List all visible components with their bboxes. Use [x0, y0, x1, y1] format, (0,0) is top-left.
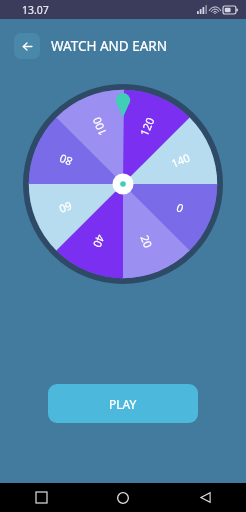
button[interactable]: Home [82, 483, 164, 512]
button[interactable]: PLAY [48, 384, 198, 423]
button[interactable]: Back [164, 483, 246, 512]
button[interactable]: Spin wheel [23, 84, 223, 284]
staticText: 13.07 [22, 3, 49, 17]
button[interactable]: Recent apps [0, 483, 82, 512]
staticText: PLAY [109, 396, 137, 412]
staticText: WATCH AND EARN [51, 37, 168, 55]
button[interactable]: Back [14, 33, 40, 59]
